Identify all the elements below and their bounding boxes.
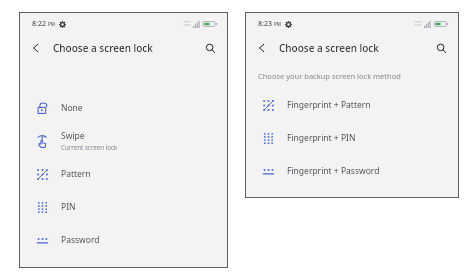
button[interactable]: PIN <box>20 190 227 223</box>
staticText: Choose your backup screen lock method <box>258 71 401 81</box>
button[interactable]: Fingerprint + Pattern <box>246 88 458 121</box>
button[interactable]: Back <box>252 38 272 58</box>
staticText: Fingerprint + Pattern <box>287 99 371 111</box>
staticText: Choose a screen lock <box>53 41 153 55</box>
button[interactable]: Search <box>431 38 451 58</box>
staticText: None <box>61 102 83 114</box>
button[interactable]: Back <box>26 38 46 58</box>
staticText: Choose a screen lock <box>279 41 379 55</box>
button[interactable]: Search <box>200 38 220 58</box>
button[interactable]: Fingerprint + Password <box>246 154 458 187</box>
staticText: Swipe <box>61 130 85 142</box>
staticText: 8:23 <box>258 19 272 29</box>
button[interactable]: Swipe <box>20 124 227 157</box>
staticText: Fingerprint + PIN <box>287 132 356 144</box>
staticText: Fingerprint + Password <box>287 165 380 177</box>
staticText: PIN <box>61 201 76 213</box>
button[interactable]: Fingerprint + PIN <box>246 121 458 154</box>
staticText: PM <box>48 21 55 27</box>
staticText: 8:22 <box>32 19 46 29</box>
staticText: Pattern <box>61 168 91 180</box>
button[interactable]: Password <box>20 223 227 256</box>
staticText: Current screen lock <box>61 143 118 151</box>
button[interactable]: Pattern <box>20 157 227 190</box>
staticText: PM <box>274 21 281 27</box>
staticText: Password <box>61 234 100 246</box>
button[interactable]: None <box>20 91 227 124</box>
